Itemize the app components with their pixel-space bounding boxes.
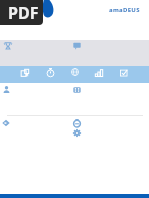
- button[interactable]: Amadeus: [109, 6, 140, 14]
- button[interactable]: Fare: [2, 119, 10, 127]
- button[interactable]: Tasks: [120, 69, 128, 77]
- button[interactable]: PDF: [0, 0, 43, 25]
- button[interactable]: Settings: [73, 129, 81, 137]
- button[interactable]: Network: [71, 68, 79, 76]
- button[interactable]: Baggage: [73, 119, 81, 127]
- button[interactable]: Statistics: [95, 69, 103, 77]
- staticText: amaDEUS: [109, 6, 140, 14]
- button[interactable]: Traveller: [3, 86, 10, 93]
- button[interactable]: Documents: [21, 69, 29, 77]
- button[interactable]: Timing: [46, 68, 55, 77]
- button[interactable]: Comments: [73, 42, 81, 50]
- staticText: PDF: [8, 2, 39, 24]
- button[interactable]: Seat map: [73, 86, 81, 94]
- button[interactable]: Loyalty: [4, 42, 12, 50]
